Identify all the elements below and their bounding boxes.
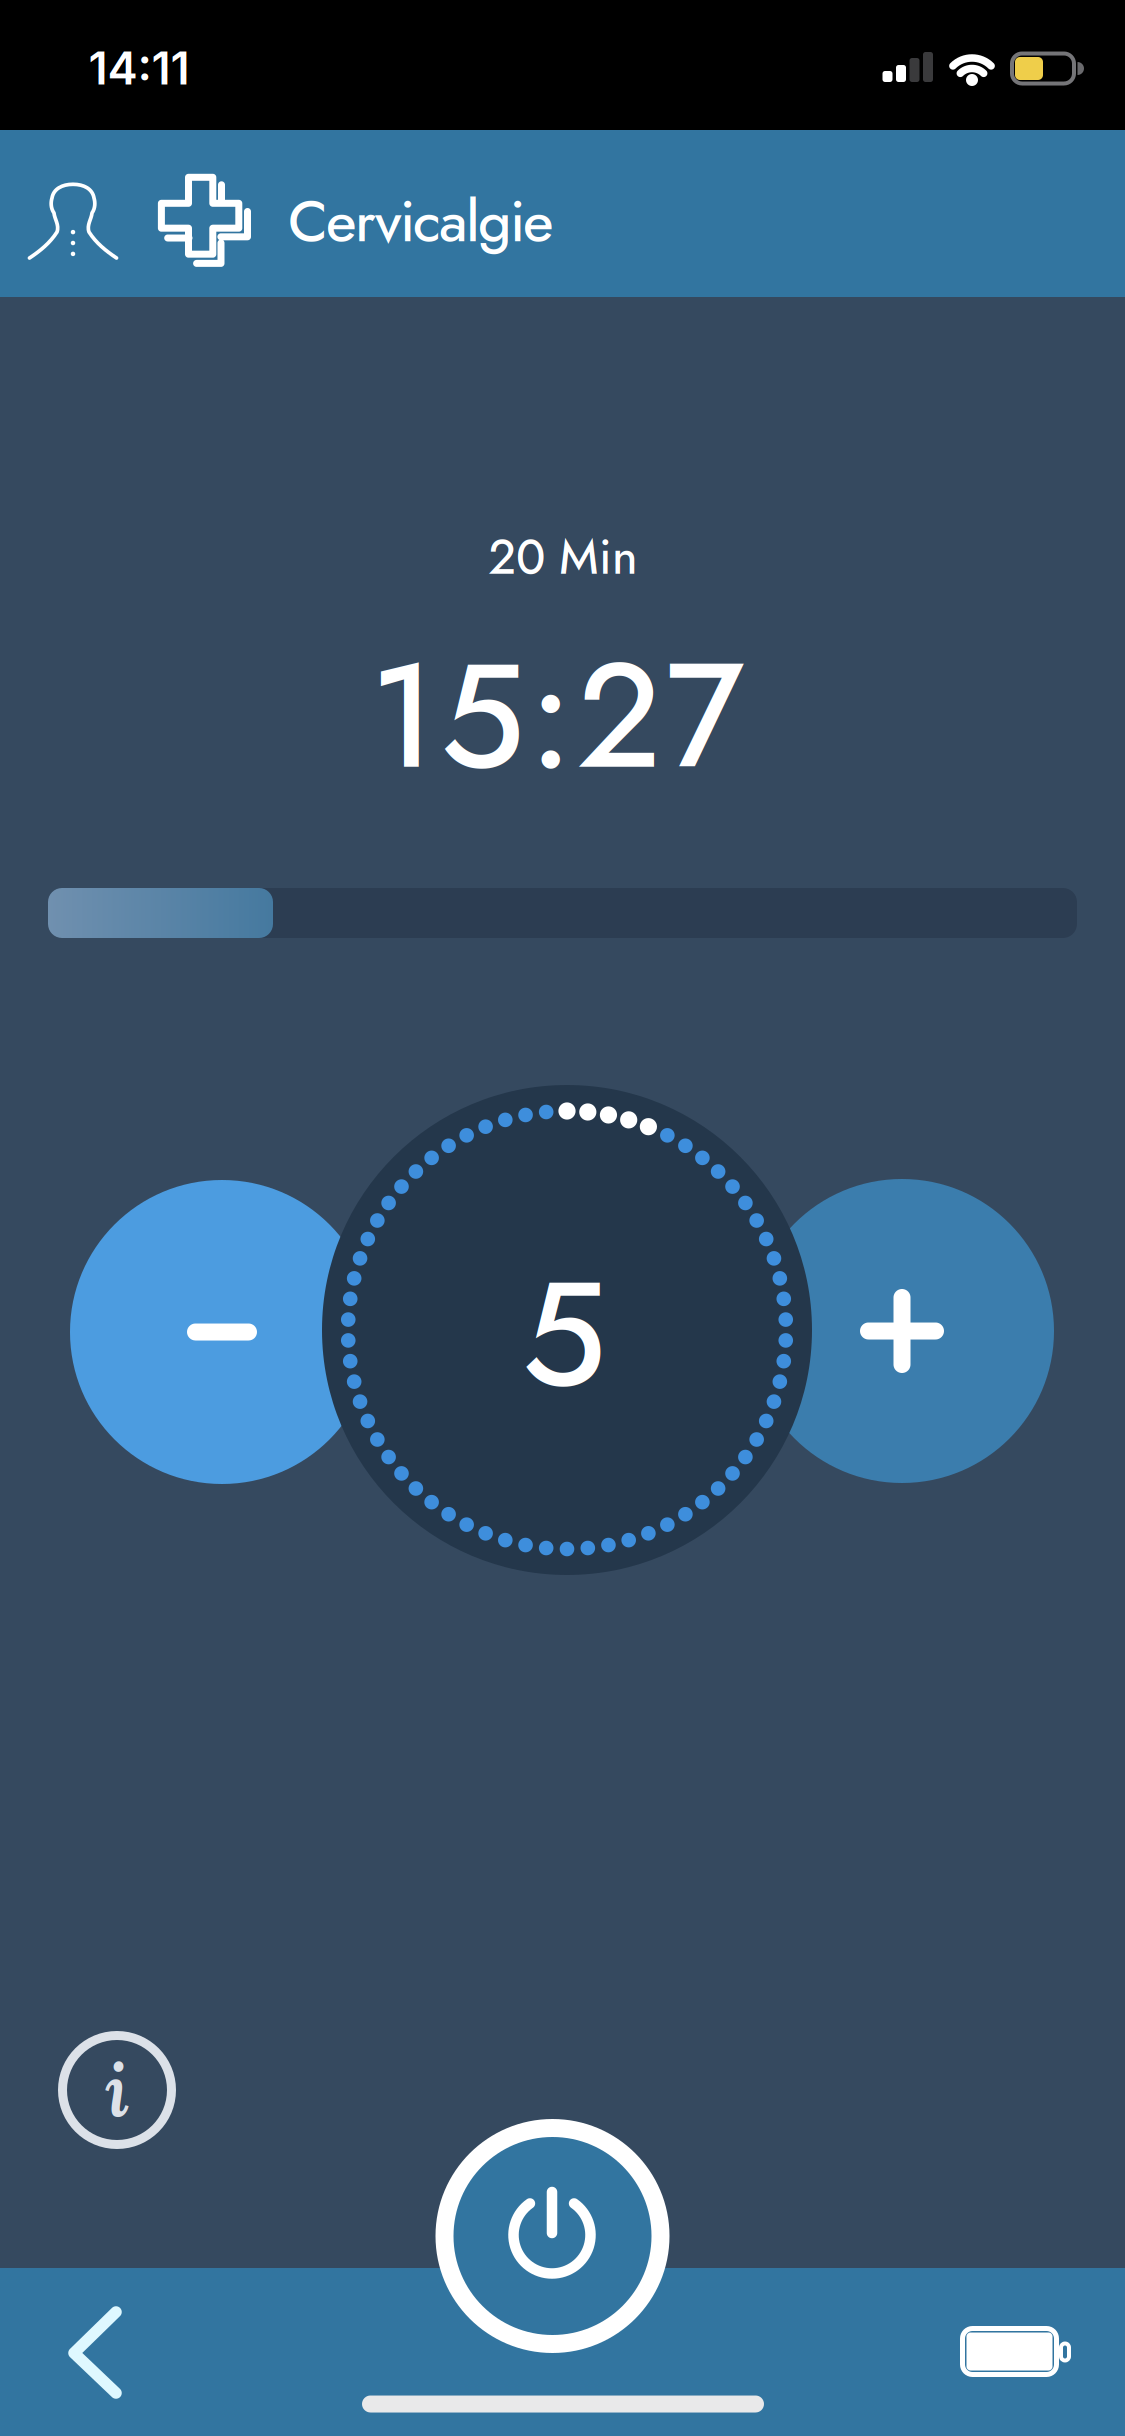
staticText: 5 xyxy=(521,1228,606,1439)
staticText: 15:27 xyxy=(369,610,744,821)
button[interactable]: Program info xyxy=(55,2028,179,2152)
button[interactable]: Programs xyxy=(143,159,263,279)
button[interactable]: Decrease intensity xyxy=(70,1180,374,1484)
button[interactable]: Increase intensity xyxy=(750,1179,1054,1483)
staticText: i xyxy=(105,2044,129,2136)
staticText: 20 Min xyxy=(488,522,638,592)
staticText: 14:11 xyxy=(88,41,189,95)
staticText: Cervicalgie xyxy=(288,179,554,263)
button[interactable]: Body zone xyxy=(13,159,133,279)
button[interactable]: Back xyxy=(50,2292,140,2412)
button[interactable]: Start stimulation xyxy=(432,2116,672,2356)
